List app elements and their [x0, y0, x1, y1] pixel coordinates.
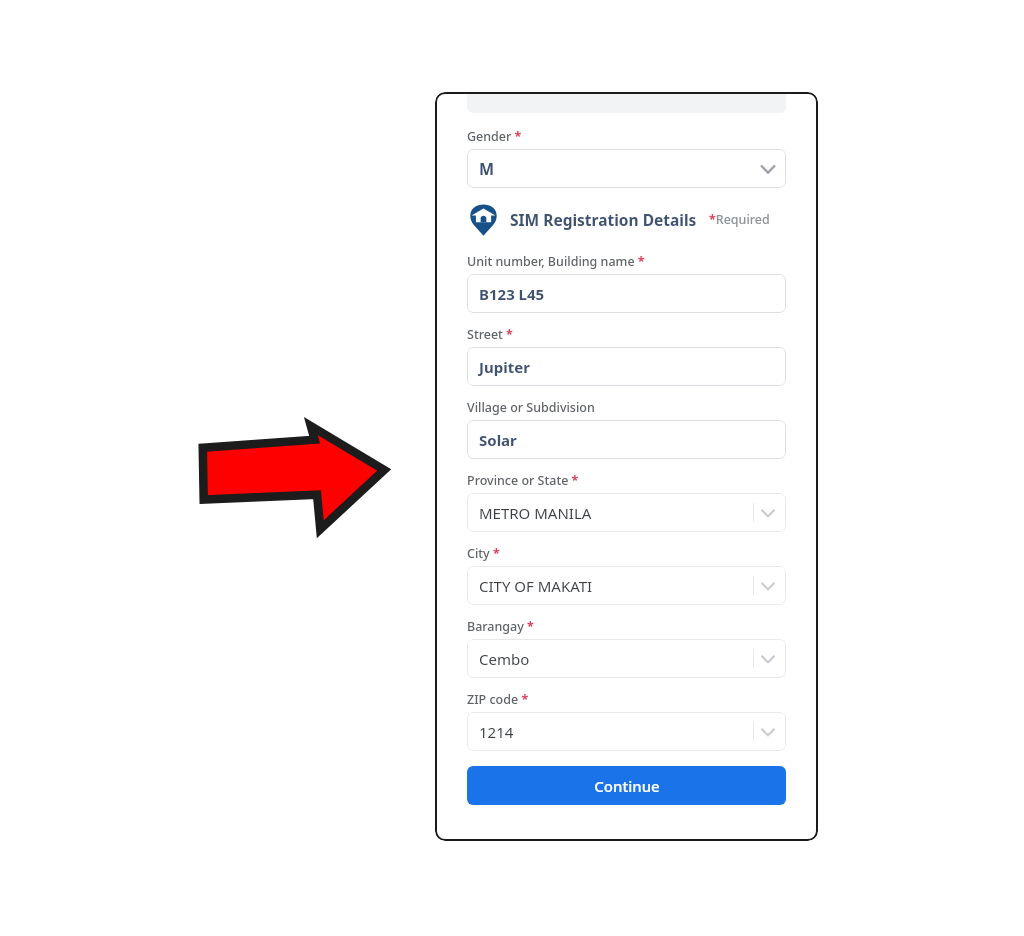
staticText: CITY OF MAKATI [479, 576, 593, 596]
staticText: Village or Subdivision [467, 399, 595, 416]
button[interactable]: M [467, 149, 786, 188]
button[interactable]: B123 L45 [467, 274, 786, 313]
staticText: Continue [594, 776, 660, 796]
staticText: Jupiter [479, 357, 530, 377]
staticText: Street * [467, 326, 513, 343]
staticText: ZIP code * [467, 691, 529, 708]
button[interactable]: Solar [467, 420, 786, 459]
staticText: Solar [479, 430, 517, 450]
staticText: METRO MANILA [479, 503, 592, 523]
staticText: B123 L45 [479, 284, 545, 304]
staticText: Gender * [467, 128, 522, 145]
staticText: Unit number, Building name * [467, 253, 645, 270]
staticText: M [479, 158, 495, 180]
button[interactable]: Jupiter [467, 347, 786, 386]
button[interactable]: METRO MANILA [467, 493, 786, 532]
other: Address location [467, 203, 500, 236]
staticText: SIM Registration Details [510, 209, 697, 230]
staticText: Barangay * [467, 618, 534, 635]
button[interactable]: Cembo [467, 639, 786, 678]
staticText: City * [467, 545, 500, 562]
staticText: Province or State * [467, 472, 579, 489]
staticText: 1214 [479, 722, 514, 742]
button[interactable]: CITY OF MAKATI [467, 566, 786, 605]
button[interactable]: Continue [467, 766, 786, 805]
staticText: *Required [709, 211, 770, 228]
button[interactable]: 1214 [467, 712, 786, 751]
staticText: Cembo [479, 649, 530, 669]
